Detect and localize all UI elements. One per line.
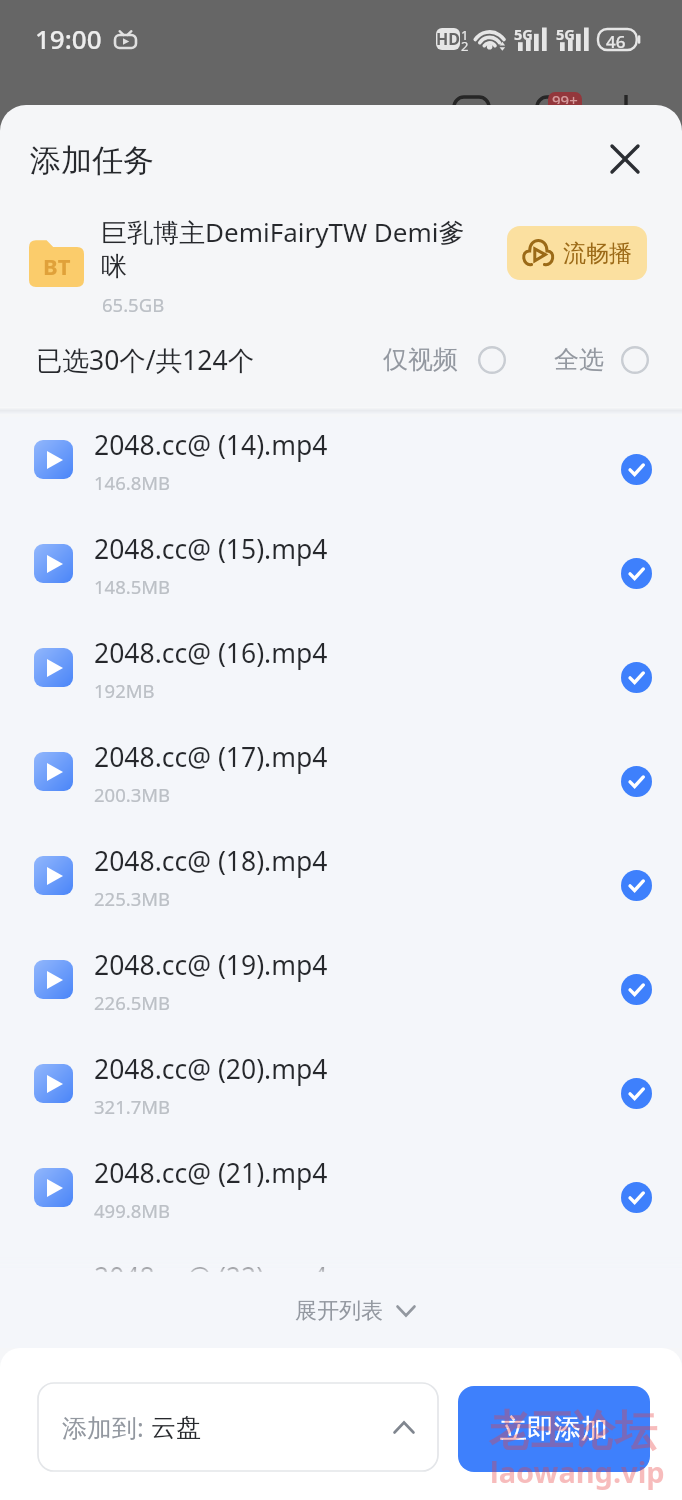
button[interactable]: 流畅播 (507, 226, 647, 280)
staticText: 2048.cc@ (15).mp4 (94, 531, 594, 567)
button[interactable]: 2048.cc@ (22).mp4 (0, 1249, 682, 1272)
staticText: 148.5MB (94, 574, 171, 599)
staticText: 2048.cc@ (18).mp4 (94, 843, 594, 879)
staticText: 226.5MB (94, 990, 171, 1015)
button[interactable]: 展开列表 (281, 1296, 402, 1324)
staticText: 2048.cc@ (20).mp4 (94, 1051, 594, 1087)
staticText: 2048.cc@ (14).mp4 (94, 427, 594, 463)
staticText: 展开列表 (295, 1297, 383, 1325)
button[interactable]: 添加到: (38, 1383, 438, 1471)
staticText: 仅视频 (383, 344, 458, 375)
button[interactable]: 2048.cc@ (15).mp4 (0, 521, 682, 625)
button[interactable]: 2048.cc@ (21).mp4 (0, 1145, 682, 1249)
staticText: 巨乳博主DemiFairyTW Demi爹咪 (101, 214, 467, 283)
staticText: 192MB (94, 678, 155, 703)
staticText: 65.5GB (102, 292, 165, 317)
button[interactable]: 全选 (554, 344, 649, 375)
staticText: 2048.cc@ (17).mp4 (94, 739, 594, 775)
staticText: 19:00 (35, 21, 102, 56)
button[interactable]: Close (599, 133, 651, 185)
staticText: 立即添加 (500, 1412, 608, 1446)
staticText: 1 (461, 26, 469, 44)
staticText: 添加到: (62, 1410, 151, 1444)
staticText: 老王论坛 (489, 1405, 657, 1458)
button[interactable]: 2048.cc@ (14).mp4 (0, 417, 682, 521)
button[interactable]: 2048.cc@ (16).mp4 (0, 625, 682, 729)
staticText: 5G (556, 24, 575, 44)
staticText: 添加任务 (30, 141, 154, 180)
staticText: 2048.cc@ (16).mp4 (94, 635, 594, 671)
staticText: 225.3MB (94, 886, 171, 911)
staticText: 2 (461, 37, 469, 55)
staticText: 200.3MB (94, 782, 171, 807)
staticText: 流畅播 (563, 239, 632, 268)
staticText: 已选30个/共124个 (36, 342, 255, 378)
staticText: 2048.cc@ (19).mp4 (94, 947, 594, 983)
staticText: 99+ (552, 92, 578, 104)
button[interactable]: 2048.cc@ (17).mp4 (0, 729, 682, 833)
staticText: 5G (514, 24, 533, 44)
button[interactable]: 立即添加 (458, 1386, 650, 1472)
staticText: 321.7MB (94, 1094, 171, 1119)
staticText: 2048.cc@ (21).mp4 (94, 1155, 594, 1191)
button[interactable]: 仅视频 (383, 344, 506, 375)
staticText: 46 (606, 30, 626, 53)
staticText: laowang.vip (490, 1452, 665, 1491)
staticText: BT (43, 251, 71, 281)
staticText: 2048.cc@ (22).mp4 (94, 1259, 594, 1272)
staticText: HD (436, 28, 460, 50)
staticText: 云盘 (151, 1412, 201, 1443)
staticText: 499.8MB (94, 1198, 171, 1223)
button[interactable]: 2048.cc@ (19).mp4 (0, 937, 682, 1041)
button[interactable]: 2048.cc@ (20).mp4 (0, 1041, 682, 1145)
button[interactable]: 2048.cc@ (18).mp4 (0, 833, 682, 937)
staticText: 全选 (554, 344, 604, 375)
staticText: 146.8MB (94, 470, 171, 495)
